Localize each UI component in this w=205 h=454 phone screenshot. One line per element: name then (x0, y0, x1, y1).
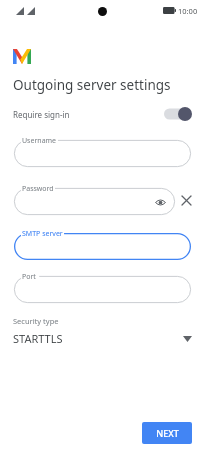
staticText: Require sign-in (13, 109, 70, 120)
button[interactable]: SMTP server (14, 233, 191, 260)
staticText: Port (22, 272, 36, 282)
staticText: SMTP server (22, 229, 63, 239)
button[interactable]: Require sign-in toggle (164, 106, 192, 122)
button[interactable]: Security type (0, 316, 205, 346)
button[interactable]: Password (14, 188, 175, 215)
staticText: Username (22, 136, 57, 146)
staticText: NEXT (156, 427, 179, 439)
staticText: Security type (13, 316, 59, 326)
staticText: 10:00 (178, 6, 198, 16)
button[interactable]: Port (14, 276, 191, 303)
button[interactable]: Require sign-in (0, 102, 205, 126)
button[interactable]: Username (14, 140, 191, 167)
button[interactable]: NEXT (142, 422, 192, 444)
staticText: STARTTLS (13, 331, 63, 346)
staticText: Outgoing server settings (13, 76, 171, 94)
staticText: Password (22, 184, 54, 194)
button[interactable]: Clear password (178, 192, 195, 209)
button[interactable]: Show password (153, 195, 167, 209)
